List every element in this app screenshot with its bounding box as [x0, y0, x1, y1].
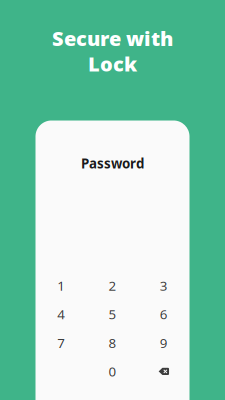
button[interactable]: 5: [87, 300, 138, 328]
button[interactable]: 4: [35, 300, 87, 328]
staticText: Secure with: [52, 25, 173, 52]
button[interactable]: Delete: [138, 357, 189, 386]
staticText: 9: [160, 334, 168, 352]
button[interactable]: 2: [87, 271, 138, 300]
staticText: 7: [57, 334, 65, 352]
staticText: 2: [108, 277, 116, 294]
staticText: Password: [81, 154, 144, 172]
staticText: 0: [108, 362, 116, 380]
staticText: 6: [160, 305, 168, 323]
staticText: 3: [160, 277, 168, 294]
button[interactable]: 3: [138, 271, 189, 300]
button[interactable]: 9: [138, 328, 189, 357]
button[interactable]: 1: [35, 271, 87, 300]
staticText: 4: [57, 305, 65, 323]
staticText: Lock: [88, 51, 137, 77]
staticText: 8: [108, 334, 116, 352]
button[interactable]: 7: [35, 328, 87, 357]
button[interactable]: 0: [87, 357, 138, 386]
staticText: 5: [108, 305, 116, 323]
staticText: 1: [57, 277, 65, 294]
button[interactable]: 6: [138, 300, 189, 328]
button[interactable]: 8: [87, 328, 138, 357]
